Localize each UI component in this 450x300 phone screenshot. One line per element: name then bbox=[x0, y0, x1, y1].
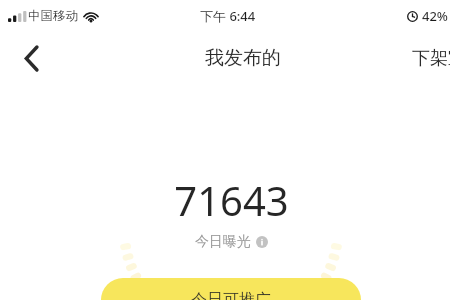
staticText: 我发布的 bbox=[205, 46, 281, 70]
button[interactable]: Back bbox=[10, 37, 52, 79]
staticText: 71643 bbox=[174, 173, 289, 227]
staticText: 42% bbox=[422, 7, 448, 25]
button[interactable]: 今日曝光 bbox=[195, 233, 268, 251]
staticText: 下午 6:44 bbox=[200, 7, 256, 25]
staticText: 今日曝光 bbox=[195, 233, 251, 251]
button[interactable]: 今日可推广 bbox=[101, 278, 361, 300]
staticText: 中国移动 bbox=[28, 8, 78, 24]
button[interactable]: 下架宝贝 bbox=[412, 47, 450, 70]
staticText: 今日可推广 bbox=[191, 290, 271, 300]
